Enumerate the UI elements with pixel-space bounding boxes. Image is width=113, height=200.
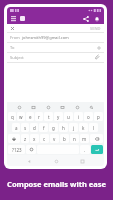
button[interactable]: Share (81, 14, 90, 23)
button[interactable]: Menu (9, 14, 18, 23)
button[interactable]: Close (8, 24, 16, 32)
staticText: p (97, 114, 100, 120)
button[interactable]: . (80, 145, 90, 154)
staticText: x (33, 136, 36, 142)
staticText: n (73, 136, 76, 142)
staticText: o (87, 114, 90, 120)
staticText: y (57, 114, 60, 120)
button[interactable]: r (35, 112, 43, 121)
button[interactable]: Back (25, 157, 33, 165)
button[interactable]: From (10, 33, 101, 42)
button[interactable]: Emoji (26, 145, 36, 154)
staticText: i (78, 114, 80, 120)
staticText: u (67, 114, 70, 120)
staticText: f (43, 125, 45, 131)
button[interactable]: Recents (78, 157, 86, 165)
button[interactable]: g (49, 123, 58, 132)
button[interactable]: o (84, 112, 93, 121)
button[interactable]: Notifications (92, 14, 101, 23)
button[interactable]: j (69, 123, 78, 132)
staticText: c (43, 136, 46, 142)
staticText: d (33, 125, 36, 131)
button[interactable]: Home (52, 157, 60, 165)
staticText: Subject (10, 55, 24, 60)
staticText: Compose emails with ease (0, 179, 113, 189)
button[interactable]: e (26, 112, 34, 121)
button[interactable]: App icon (20, 16, 25, 21)
staticText: s (24, 125, 27, 131)
staticText: j (73, 125, 75, 131)
button[interactable]: Backspace (90, 134, 103, 143)
button[interactable]: Keyboard tool (74, 104, 81, 111)
button[interactable]: f (39, 123, 48, 132)
button[interactable]: w (17, 112, 25, 121)
button[interactable]: v (50, 134, 59, 143)
button[interactable]: Keyboard tool (16, 104, 23, 111)
button[interactable]: Shift (8, 134, 20, 143)
staticText: ?123 (12, 147, 22, 153)
staticText: SEND (90, 26, 101, 31)
staticText: k (82, 125, 85, 131)
button[interactable]: a (12, 123, 20, 132)
button[interactable]: x (30, 134, 39, 143)
staticText: g (52, 125, 55, 131)
button[interactable]: To (10, 43, 101, 52)
button[interactable]: z (21, 134, 29, 143)
button[interactable]: Enter (91, 145, 103, 154)
staticText: q (11, 114, 14, 120)
staticText: m (82, 136, 87, 142)
staticText: e (29, 114, 32, 120)
button[interactable]: ?123 (8, 145, 25, 154)
button[interactable]: n (70, 134, 79, 143)
button[interactable]: u (64, 112, 73, 121)
button[interactable]: Keyboard tool (88, 104, 95, 111)
button[interactable]: i (74, 112, 83, 121)
button[interactable]: Subject (10, 53, 101, 62)
button[interactable]: y (54, 112, 63, 121)
button[interactable]: m (80, 134, 89, 143)
button[interactable]: p (94, 112, 103, 121)
staticText: r (38, 114, 40, 120)
button[interactable]: t (44, 112, 53, 121)
button[interactable]: h (59, 123, 68, 132)
staticText: From (10, 35, 20, 40)
staticText: t (48, 114, 50, 120)
staticText: z (24, 136, 27, 142)
staticText: b (63, 136, 66, 142)
staticText: v (53, 136, 56, 142)
button[interactable]: Keyboard tool (59, 104, 66, 111)
button[interactable]: k (79, 123, 88, 132)
button[interactable]: Keyboard tool (30, 104, 37, 111)
button[interactable]: l (89, 123, 98, 132)
staticText: To (10, 45, 15, 50)
button[interactable]: Attach file (94, 54, 101, 61)
button[interactable]: b (60, 134, 69, 143)
staticText: . (84, 147, 86, 153)
button[interactable]: Keyboard tool (45, 104, 52, 111)
button[interactable]: c (40, 134, 49, 143)
staticText: johnsmith99@gmail.com (22, 35, 69, 40)
button[interactable]: d (30, 123, 38, 132)
button[interactable]: s (21, 123, 29, 132)
staticText: w (19, 114, 23, 120)
staticText: h (62, 125, 65, 131)
staticText: a (15, 125, 18, 131)
button[interactable]: SEND (90, 26, 101, 31)
staticText: l (93, 125, 95, 131)
button[interactable]: q (8, 112, 16, 121)
